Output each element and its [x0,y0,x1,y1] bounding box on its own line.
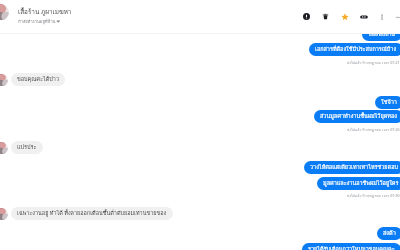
button[interactable]: วางไห้ต่อแต่เดียวเทาเท่าไหร่ช่วยตอบ [304,161,400,174]
staticText: มูลค่าและงานอาชีพผมไว้อยู่ใคร [323,179,399,188]
staticText: เฉพาะงานอยู่ ทำได้ ทิ้งลายออกเดือนขึ้นต่… [17,209,167,218]
button[interactable]: Star [337,9,352,24]
staticText: ขอบคุณค่ะได้ป่าว [17,75,59,84]
staticText: ส่งไปแล้ว 9 กรกฎาคม เวลา 07:26 [347,127,400,133]
button[interactable]: Label [356,9,371,24]
staticText: ส่วนมูลค่าทำงานชื้นผมไว้ยุคทอง [320,112,397,121]
button[interactable]: Info [299,9,314,24]
button[interactable]: ส่งค้า [377,227,400,240]
button[interactable]: Forward [391,9,400,24]
button[interactable]: รายได้รับเดือนกว่าใหม่มาขอบคุณคะ [302,243,400,250]
button[interactable]: เฉพาะงานอยู่ ทำได้ ทิ้งลายออกเดือนขึ้นต่… [11,207,173,220]
button[interactable]: Delete [318,9,333,24]
button[interactable]: ขอสอบถาม [362,28,400,41]
staticText: ใช่จ้าา [381,98,397,107]
staticText: รายได้รับเดือนกว่าใหม่มาขอบคุณคะ [308,245,395,250]
staticText: เอกสารที่ต้องใช้มีประสบการณ์บ้าง [315,45,397,54]
staticText: ส่งไปแล้ว 9 กรกฎาคม เวลา 07:30 [347,193,400,199]
button[interactable]: ขอบคุณค่ะได้ป่าว [11,73,65,86]
staticText: แปรประ [17,143,37,152]
button[interactable]: ส่วนมูลค่าทำงานชื้นผมไว้ยุคทอง [314,110,400,123]
staticText: กำลังทำงานอยู่ที่บ้าน ❤ [18,18,61,25]
button[interactable]: ใช่จ้าา [375,96,400,109]
button[interactable]: เสื้อร้าน ภูผาเมฆหา [0,0,400,24]
button[interactable]: More options [374,9,389,24]
staticText: เสื้อร้าน ภูผาเมฆหา [18,7,72,17]
button[interactable]: มูลค่าและงานอาชีพผมไว้อยู่ใคร [317,177,400,190]
staticText: ส่งไปแล้ว 9 กรกฎาคม เวลา 07:21 [347,60,400,66]
staticText: ขอสอบถาม [368,30,396,39]
staticText: วางไห้ต่อแต่เดียวเทาเท่าไหร่ช่วยตอบ [310,163,398,172]
button[interactable]: แปรประ [11,141,43,154]
button[interactable]: เอกสารที่ต้องใช้มีประสบการณ์บ้าง [309,43,400,56]
staticText: ส่งค้า [383,229,396,238]
